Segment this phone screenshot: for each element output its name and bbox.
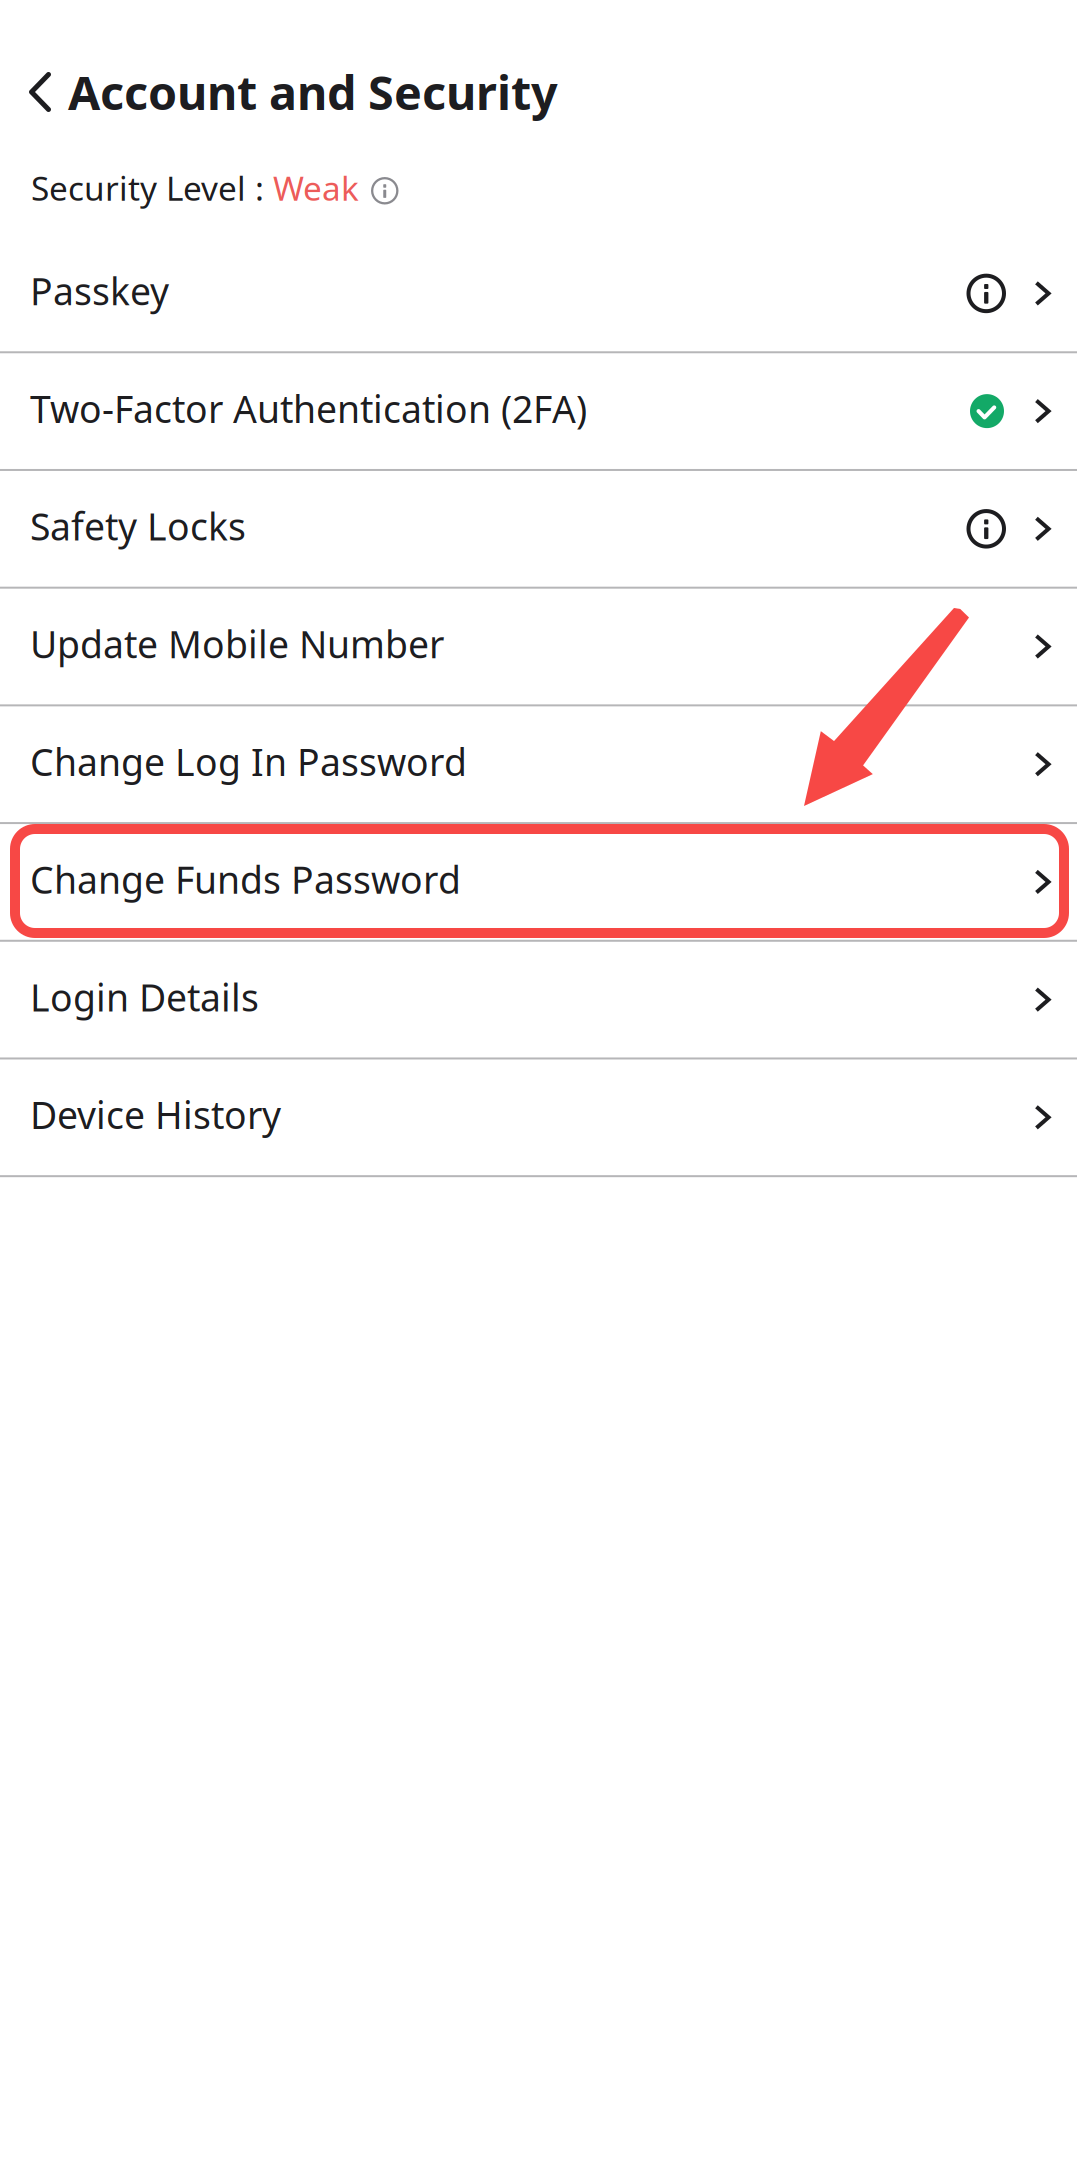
- staticText: Change Funds Password: [30, 854, 461, 904]
- button[interactable]: Passkey: [0, 236, 1077, 353]
- staticText: Login Details: [30, 972, 259, 1022]
- staticText: Safety Locks: [30, 501, 246, 551]
- button[interactable]: Change Log In Password: [0, 706, 1077, 824]
- staticText: Passkey: [30, 266, 169, 315]
- staticText: Security Level :: [31, 166, 273, 210]
- button[interactable]: Login Details: [0, 942, 1077, 1059]
- button[interactable]: Safety Locks: [0, 471, 1077, 589]
- staticText: Device History: [30, 1090, 281, 1139]
- button[interactable]: About security level: [359, 169, 398, 206]
- staticText: Account and Security: [68, 61, 558, 123]
- staticText: Weak: [273, 166, 359, 210]
- button[interactable]: Two-Factor Authentication (2FA): [0, 353, 1077, 471]
- button[interactable]: Change Funds Password: [0, 824, 1077, 942]
- button[interactable]: Account and Security: [0, 0, 558, 140]
- staticText: Change Log In Password: [30, 737, 467, 786]
- staticText: Two-Factor Authentication (2FA): [30, 384, 587, 433]
- staticText: Update Mobile Number: [30, 619, 444, 669]
- button[interactable]: Update Mobile Number: [0, 589, 1077, 706]
- button[interactable]: Device History: [0, 1059, 1077, 1177]
